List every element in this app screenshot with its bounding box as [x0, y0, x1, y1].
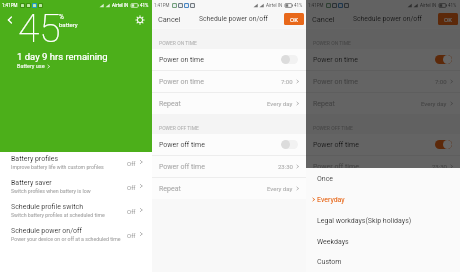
staticText: POWER ON TIME: [159, 40, 197, 46]
staticText: Weekdays: [317, 238, 349, 246]
button[interactable]: Repeat: [152, 93, 306, 114]
button[interactable]: Repeat: [306, 93, 460, 114]
staticText: Battery saver: [11, 179, 52, 187]
button[interactable]: Power off time: [152, 156, 306, 177]
staticText: 45: [18, 6, 61, 52]
staticText: battery: [59, 21, 78, 28]
button[interactable]: OK: [438, 13, 458, 25]
button[interactable]: Repeat: [306, 178, 460, 199]
staticText: 7:00: [435, 78, 447, 85]
staticText: Schedule profile switch: [11, 203, 83, 211]
staticText: POWER OFF TIME: [159, 125, 199, 131]
staticText: Power on time: [159, 78, 204, 86]
staticText: OK: [290, 16, 298, 23]
button[interactable]: Once: [306, 168, 460, 189]
button[interactable]: OK: [284, 13, 304, 25]
staticText: 1:41PM: [2, 3, 18, 8]
button[interactable]: Power on time: [306, 49, 460, 70]
staticText: Every day: [421, 100, 447, 107]
button[interactable]: Back: [3, 13, 17, 27]
staticText: Power on time: [159, 56, 204, 64]
button[interactable]: Weekdays: [306, 231, 460, 252]
staticText: Repeat: [159, 185, 181, 193]
staticText: Schedule power on/off: [11, 227, 82, 235]
button[interactable]: Cancel: [310, 13, 337, 26]
staticText: 41%: [294, 3, 303, 8]
staticText: 23:30: [432, 163, 447, 170]
staticText: Legal workdays(Skip holidays): [317, 217, 412, 225]
button[interactable]: Battery use: [17, 63, 51, 69]
staticText: 41%: [140, 3, 149, 8]
button[interactable]: Everyday: [306, 189, 460, 210]
button[interactable]: Power on time: [152, 71, 306, 92]
button[interactable]: Power on time: [306, 71, 460, 92]
staticText: Improve battery life with custom profile…: [11, 164, 104, 170]
staticText: Cancel: [158, 15, 181, 24]
staticText: Every day: [267, 185, 293, 192]
button[interactable]: Battery profiles: [0, 153, 152, 177]
button[interactable]: Legal workdays(Skip holidays): [306, 210, 460, 231]
staticText: Off: [127, 184, 136, 191]
staticText: Schedule power on/off: [199, 15, 268, 23]
button[interactable]: Power on time: [152, 49, 306, 70]
staticText: Every day: [267, 100, 293, 107]
staticText: Everyday: [317, 196, 345, 204]
button[interactable]: Custom: [306, 252, 460, 272]
staticText: Power on time: [313, 78, 358, 86]
staticText: Off: [127, 160, 136, 167]
staticText: Off: [127, 232, 136, 239]
staticText: Power off time: [159, 141, 205, 149]
staticText: Off: [127, 208, 136, 215]
staticText: Airtel IN: [112, 3, 129, 8]
staticText: Switch battery profiles at scheduled tim…: [11, 212, 105, 218]
button[interactable]: Repeat: [152, 178, 306, 199]
staticText: Repeat: [159, 100, 181, 108]
staticText: 23:30: [278, 163, 293, 170]
staticText: Power off time: [159, 163, 205, 171]
staticText: 1 day 9 hrs remaining: [17, 51, 108, 62]
staticText: Power off time: [313, 141, 359, 149]
staticText: Battery use: [17, 63, 45, 69]
button[interactable]: Power off time: [152, 134, 306, 155]
button[interactable]: Power off time: [306, 134, 460, 155]
staticText: Power your device on or off at a schedul…: [11, 236, 121, 242]
button[interactable]: Schedule profile switch: [0, 201, 152, 225]
button[interactable]: Power off time: [306, 156, 460, 177]
staticText: Airtel IN: [420, 3, 437, 8]
button[interactable]: Battery saver: [0, 177, 152, 201]
staticText: Schedule power on/off: [353, 15, 422, 23]
staticText: Power on time: [313, 56, 358, 64]
staticText: 7:00: [281, 78, 293, 85]
button[interactable]: Cancel: [156, 13, 183, 26]
staticText: Power off time: [313, 163, 359, 171]
staticText: %: [59, 13, 64, 21]
staticText: Switch profiles when battery is low: [11, 188, 91, 194]
staticText: Custom: [317, 258, 342, 266]
staticText: POWER OFF TIME: [313, 125, 353, 131]
button[interactable]: Settings: [133, 13, 147, 27]
staticText: POWER ON TIME: [313, 40, 351, 46]
staticText: Cancel: [312, 15, 335, 24]
staticText: OK: [444, 16, 452, 23]
button[interactable]: Schedule power on/off: [0, 225, 152, 249]
staticText: 1:41PM: [154, 3, 170, 8]
staticText: Once: [317, 175, 334, 183]
staticText: Repeat: [313, 100, 335, 108]
staticText: 41%: [448, 3, 457, 8]
staticText: Airtel IN: [266, 3, 283, 8]
staticText: 1:41PM: [308, 3, 324, 8]
staticText: Battery profiles: [11, 155, 59, 163]
